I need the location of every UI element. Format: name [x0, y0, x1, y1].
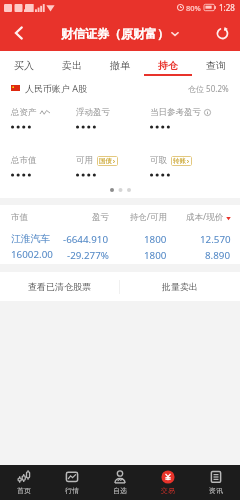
button[interactable]: 国债	[97, 156, 118, 166]
button[interactable]: 财信证券（原财富）	[57, 22, 183, 45]
button[interactable]: 卖出	[48, 51, 96, 77]
staticText: 可取	[150, 155, 167, 166]
staticText: 国债	[99, 157, 112, 165]
staticText: 12.570	[200, 233, 231, 246]
staticText: 总市值	[11, 155, 37, 166]
staticText: 1:28	[219, 2, 235, 13]
staticText: 资讯	[209, 486, 223, 495]
staticText: 撤单	[110, 59, 130, 72]
staticText: 成本/现价	[186, 211, 224, 223]
staticText: 卖出	[62, 59, 82, 72]
button[interactable]: 买入	[0, 51, 48, 77]
button[interactable]: 持仓	[144, 51, 192, 77]
button[interactable]: 人民币账户 A股	[11, 81, 229, 95]
staticText: 1800	[144, 249, 167, 259]
staticText: 财信证券（原财富）	[61, 26, 169, 41]
staticText: 行情	[65, 486, 79, 495]
staticText: 16002.000	[11, 248, 57, 259]
staticText: 交易	[161, 486, 175, 495]
staticText: 持仓/可用	[109, 211, 167, 223]
staticText: 盈亏	[57, 212, 109, 223]
button[interactable]: 江淮汽车	[0, 228, 240, 264]
staticText: 8.890	[205, 249, 231, 259]
staticText: 80%	[186, 3, 201, 13]
staticText: 转账	[173, 157, 186, 165]
button[interactable]: 撤单	[96, 51, 144, 77]
staticText: 买入	[14, 59, 34, 72]
staticText: -6644.910	[63, 233, 109, 246]
staticText: 浮动盈亏	[76, 107, 110, 118]
staticText: 批量卖出	[162, 281, 198, 292]
button[interactable]: 批量卖出	[120, 272, 240, 301]
staticText: 查询	[206, 59, 226, 72]
button[interactable]: 自选	[96, 465, 144, 500]
button[interactable]: 首页	[0, 465, 48, 500]
staticText: 江淮汽车	[11, 233, 51, 245]
button[interactable]: 行情	[48, 465, 96, 500]
staticText: 查看已清仓股票	[28, 281, 91, 292]
button[interactable]: Back	[0, 15, 38, 51]
staticText: 当日参考盈亏	[150, 107, 201, 118]
staticText: 总资产	[11, 107, 37, 118]
button[interactable]: 查询	[192, 51, 240, 77]
button[interactable]: Refresh	[204, 15, 240, 51]
button[interactable]: 转账	[171, 156, 192, 166]
staticText: 可用	[76, 155, 93, 166]
button[interactable]: 资讯	[192, 465, 240, 500]
staticText: 仓位 50.2%	[188, 83, 229, 94]
staticText: -29.277%	[67, 249, 109, 259]
button[interactable]: 查看已清仓股票	[0, 272, 119, 301]
button[interactable]: 交易	[144, 465, 192, 500]
staticText: 1800	[144, 233, 167, 246]
staticText: 人民币账户 A股	[25, 82, 88, 94]
staticText: 自选	[113, 486, 127, 495]
staticText: 首页	[17, 486, 31, 495]
staticText: 市值	[11, 212, 57, 223]
staticText: 持仓	[158, 59, 178, 72]
